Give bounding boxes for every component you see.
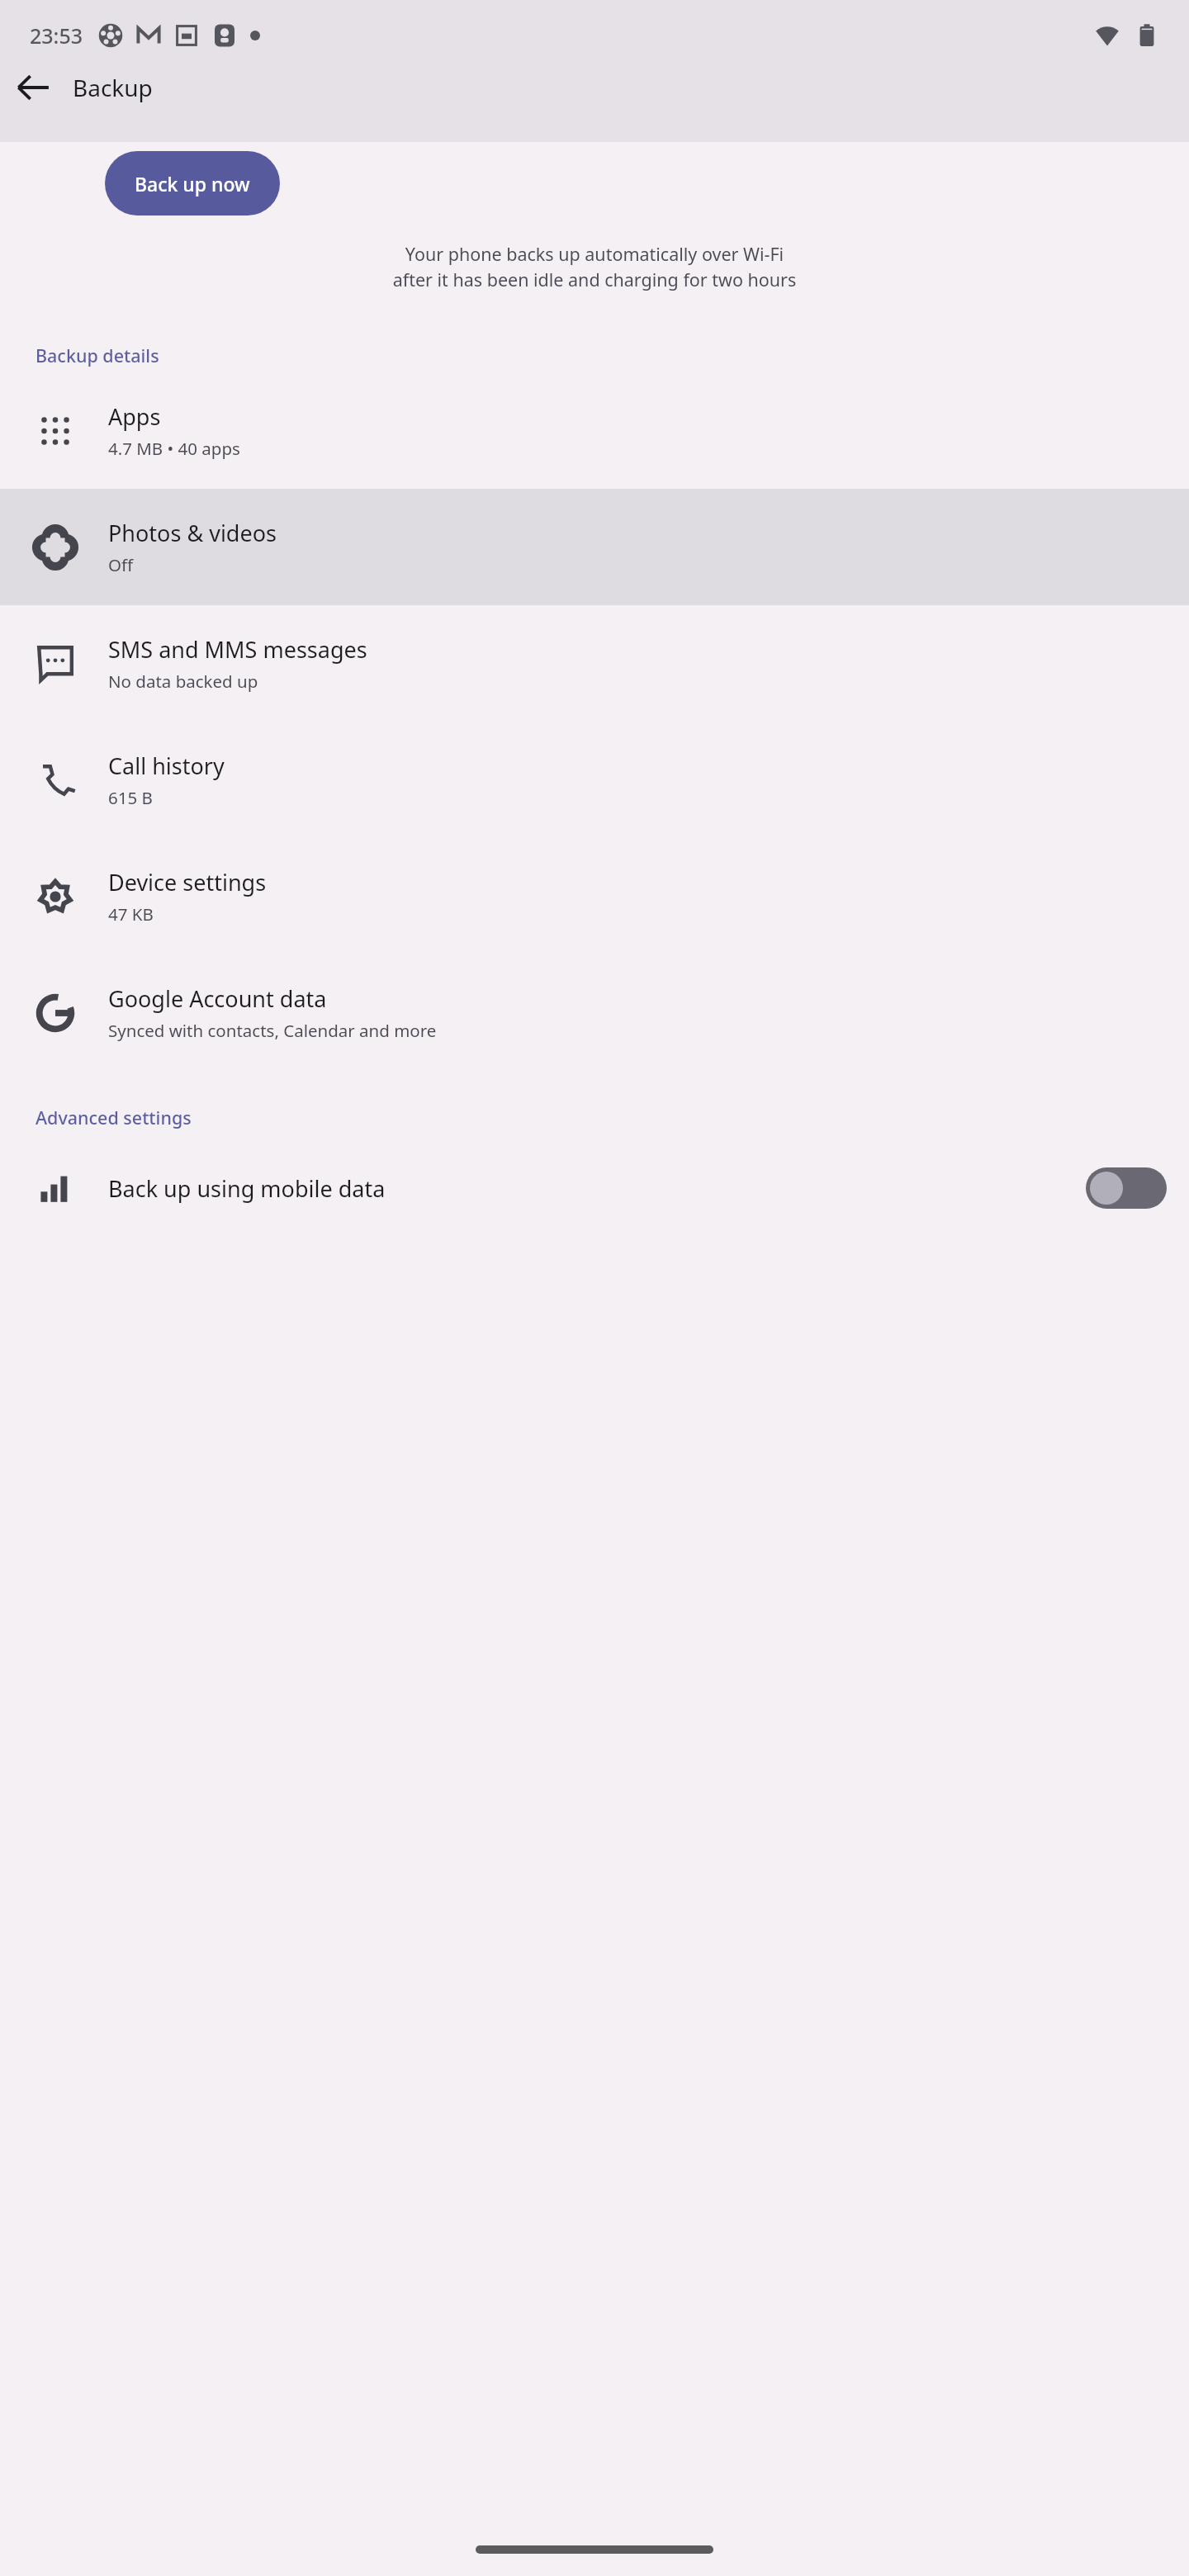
button[interactable]: Back [10,64,56,111]
staticText: Back up now [135,171,250,197]
staticText: 23:53 [30,21,83,50]
staticText: Off [108,553,134,576]
staticText: Photos & videos [108,518,277,548]
staticText: 4.7 MB • 40 apps [108,437,240,460]
button[interactable]: Google Account data [0,954,1189,1071]
button[interactable]: Apps [0,372,1189,489]
button[interactable]: Call history [0,722,1189,838]
staticText: Google Account data [108,983,327,1014]
staticText: Backup [73,72,153,103]
button[interactable]: Photos & videos [0,489,1189,605]
staticText: Device settings [108,867,267,897]
button[interactable]: Back up now [105,151,280,215]
staticText: SMS and MMS messages [108,634,367,665]
staticText: No data backed up [108,670,258,693]
staticText: 47 KB [108,902,154,926]
staticText: Back up using mobile data [108,1173,1086,1204]
button[interactable]: Device settings [0,838,1189,954]
button[interactable]: Back up using mobile data [0,1134,1189,1242]
staticText: Your phone backs up automatically over W… [51,242,1138,292]
staticText: Apps [108,401,161,432]
staticText: 615 B [108,786,153,809]
staticText: Call history [108,751,225,781]
staticText: Backup details [36,343,159,367]
button[interactable]: SMS and MMS messages [0,605,1189,722]
staticText: Synced with contacts, Calendar and more [108,1019,437,1042]
staticText: Advanced settings [36,1106,192,1129]
